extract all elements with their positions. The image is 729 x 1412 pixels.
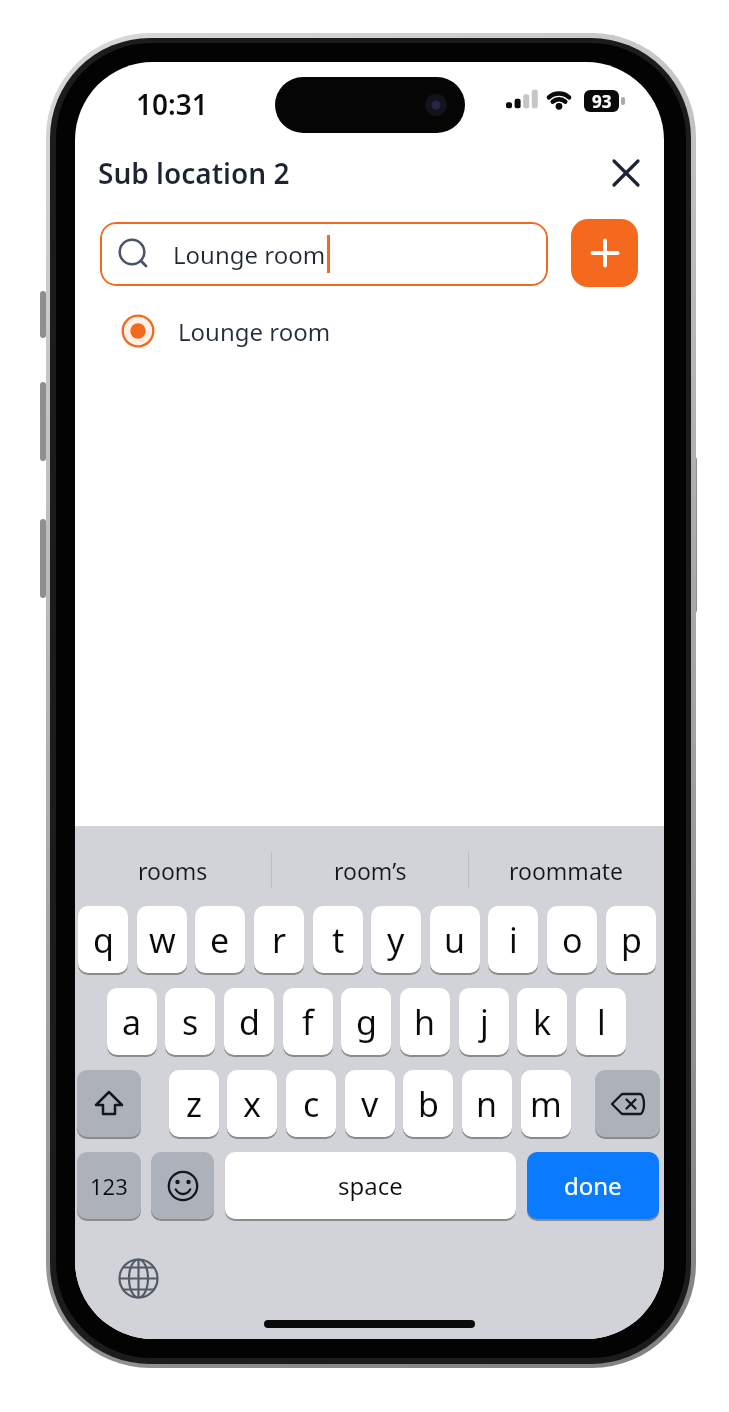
staticText: 93 [592, 90, 612, 112]
button[interactable]: e [195, 906, 245, 973]
staticText: rooms [138, 855, 208, 886]
button[interactable]: t [313, 906, 363, 973]
button[interactable]: r [254, 906, 304, 973]
button[interactable]: b [403, 1070, 453, 1137]
button[interactable]: y [371, 906, 421, 973]
staticText: y [387, 917, 405, 963]
staticText: k [533, 999, 552, 1045]
button[interactable]: s [165, 988, 215, 1055]
staticText: g [356, 999, 377, 1045]
staticText: m [530, 1081, 562, 1127]
button[interactable]: rooms [75, 846, 271, 894]
staticText: 10:31 [136, 85, 208, 123]
button[interactable] [151, 1152, 214, 1219]
staticText: Lounge room [178, 315, 331, 348]
button[interactable] [116, 1256, 160, 1300]
button[interactable]: k [517, 988, 567, 1055]
staticText: done [564, 1169, 622, 1202]
staticText: z [186, 1081, 202, 1127]
staticText: 123 [90, 1171, 128, 1201]
button[interactable]: v [345, 1070, 395, 1137]
button[interactable]: Lounge room [100, 222, 548, 286]
button[interactable] [595, 1070, 660, 1137]
staticText: u [444, 917, 466, 963]
staticText: l [597, 999, 606, 1045]
staticText: Lounge room [173, 238, 326, 271]
button[interactable]: m [521, 1070, 571, 1137]
staticText: o [562, 917, 583, 963]
staticText: h [414, 999, 436, 1045]
staticText: f [302, 999, 314, 1045]
staticText: c [303, 1081, 320, 1127]
button[interactable]: x [227, 1070, 277, 1137]
button[interactable]: space [225, 1152, 516, 1219]
staticText: d [239, 999, 260, 1045]
button[interactable]: p [606, 906, 656, 973]
staticText: roommate [509, 855, 624, 886]
button[interactable] [77, 1070, 141, 1137]
button[interactable]: q [78, 906, 128, 973]
staticText: s [182, 999, 199, 1045]
button[interactable]: u [430, 906, 480, 973]
staticText: t [332, 917, 345, 963]
button[interactable]: l [576, 988, 626, 1055]
staticText: a [122, 999, 142, 1045]
staticText: n [476, 1081, 498, 1127]
button[interactable]: w [137, 906, 187, 973]
button[interactable]: n [462, 1070, 512, 1137]
button[interactable] [571, 219, 638, 287]
button[interactable]: h [400, 988, 450, 1055]
button[interactable]: j [459, 988, 509, 1055]
button[interactable]: room’s [272, 846, 468, 894]
staticText: e [210, 917, 230, 963]
button[interactable]: o [547, 906, 597, 973]
staticText: space [338, 1169, 403, 1202]
staticText: q [93, 917, 114, 963]
button[interactable]: c [286, 1070, 336, 1137]
staticText: Sub location 2 [98, 154, 290, 192]
staticText: p [621, 917, 642, 963]
button[interactable] [605, 152, 647, 194]
button[interactable]: a [107, 988, 157, 1055]
button[interactable]: roommate [468, 846, 664, 894]
button[interactable]: f [283, 988, 333, 1055]
staticText: j [480, 999, 489, 1045]
staticText: v [361, 1081, 379, 1127]
staticText: x [243, 1081, 261, 1127]
button[interactable]: i [488, 906, 538, 973]
staticText: b [418, 1081, 439, 1127]
staticText: r [272, 917, 287, 963]
button[interactable]: Lounge room [121, 314, 331, 348]
staticText: w [149, 917, 176, 963]
button[interactable]: done [527, 1152, 659, 1219]
button[interactable]: g [341, 988, 391, 1055]
button[interactable]: d [224, 988, 274, 1055]
button[interactable]: 123 [77, 1152, 141, 1219]
button[interactable]: z [169, 1070, 219, 1137]
staticText: i [509, 917, 518, 963]
staticText: room’s [334, 855, 407, 886]
